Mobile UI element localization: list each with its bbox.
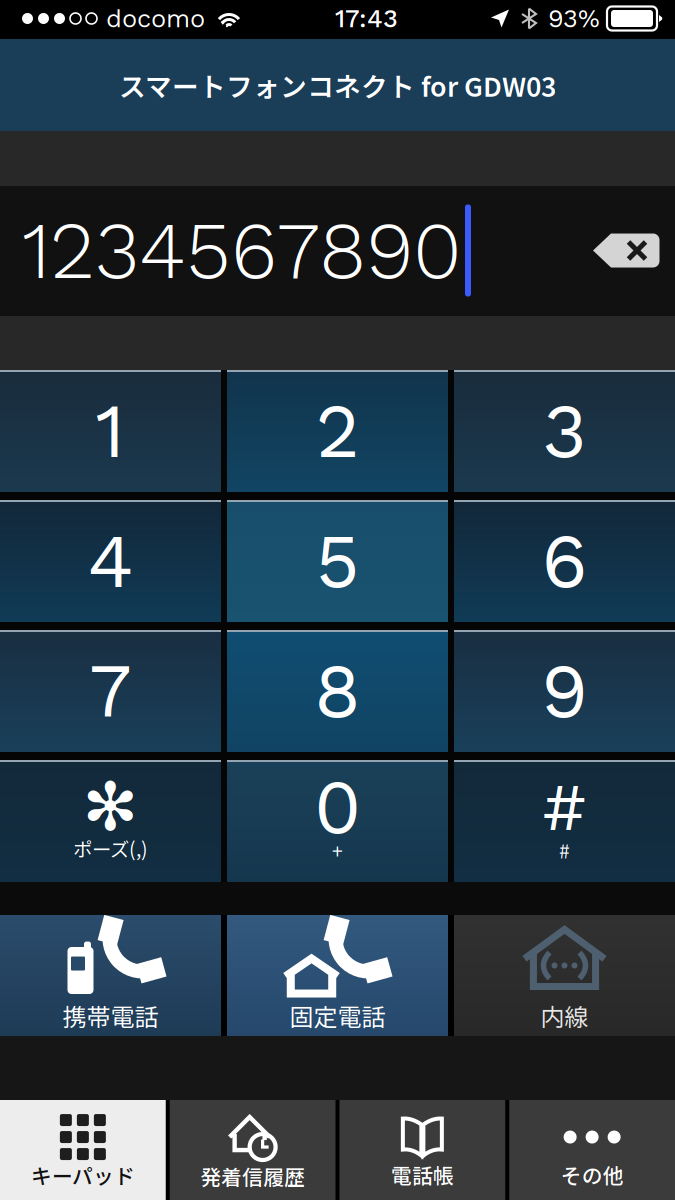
button[interactable]: 固定電話	[227, 915, 448, 1036]
button[interactable]: 電話帳	[339, 1100, 505, 1200]
staticText: 電話帳	[391, 1159, 454, 1189]
staticText: 2	[315, 386, 359, 475]
button[interactable]: 3	[454, 370, 675, 492]
staticText: #	[559, 836, 570, 864]
button[interactable]: キーパッド	[0, 1100, 166, 1200]
button[interactable]: 6	[454, 500, 675, 622]
button[interactable]: ✻	[0, 760, 221, 882]
staticText: 携帯電話	[62, 998, 158, 1033]
button[interactable]: 2	[227, 370, 448, 492]
staticText: 6	[541, 516, 587, 605]
button[interactable]: #	[454, 760, 675, 882]
button[interactable]: 8	[227, 630, 448, 752]
button[interactable]: 5	[227, 500, 448, 622]
staticText: 4	[87, 516, 133, 605]
staticText: その他	[561, 1159, 624, 1189]
button[interactable]: 7	[0, 630, 221, 752]
button[interactable]: 発着信履歴	[170, 1100, 336, 1200]
staticText: #	[543, 768, 586, 846]
button[interactable]: 削除	[591, 213, 675, 288]
staticText: 5	[315, 516, 359, 605]
staticText: ✻	[82, 768, 138, 846]
staticText: 9	[541, 646, 588, 735]
staticText: スマートフォンコネクト for GDW03	[119, 66, 556, 104]
button[interactable]: 9	[454, 630, 675, 752]
staticText: ポーズ(,)	[73, 834, 148, 862]
staticText: docomo	[106, 4, 205, 33]
staticText: 0	[314, 762, 361, 851]
staticText: 93%	[548, 4, 600, 33]
staticText: 1234567890	[22, 204, 462, 297]
staticText: 3	[542, 386, 586, 475]
button[interactable]: 内線	[454, 915, 675, 1036]
staticText: 1	[95, 386, 125, 475]
staticText: 8	[314, 646, 361, 735]
staticText: キーパッド	[31, 1160, 135, 1190]
staticText: 固定電話	[289, 998, 385, 1033]
button[interactable]: 4	[0, 500, 221, 622]
button[interactable]: 携帯電話	[0, 915, 221, 1036]
staticText: +	[332, 836, 343, 864]
staticText: 7	[89, 646, 132, 735]
button[interactable]: その他	[509, 1100, 675, 1200]
staticText: 17:43	[335, 4, 398, 33]
button[interactable]: 1	[0, 370, 221, 492]
staticText: 発着信履歴	[200, 1161, 305, 1191]
button[interactable]: 0	[227, 760, 448, 882]
staticText: 内線	[540, 998, 588, 1033]
